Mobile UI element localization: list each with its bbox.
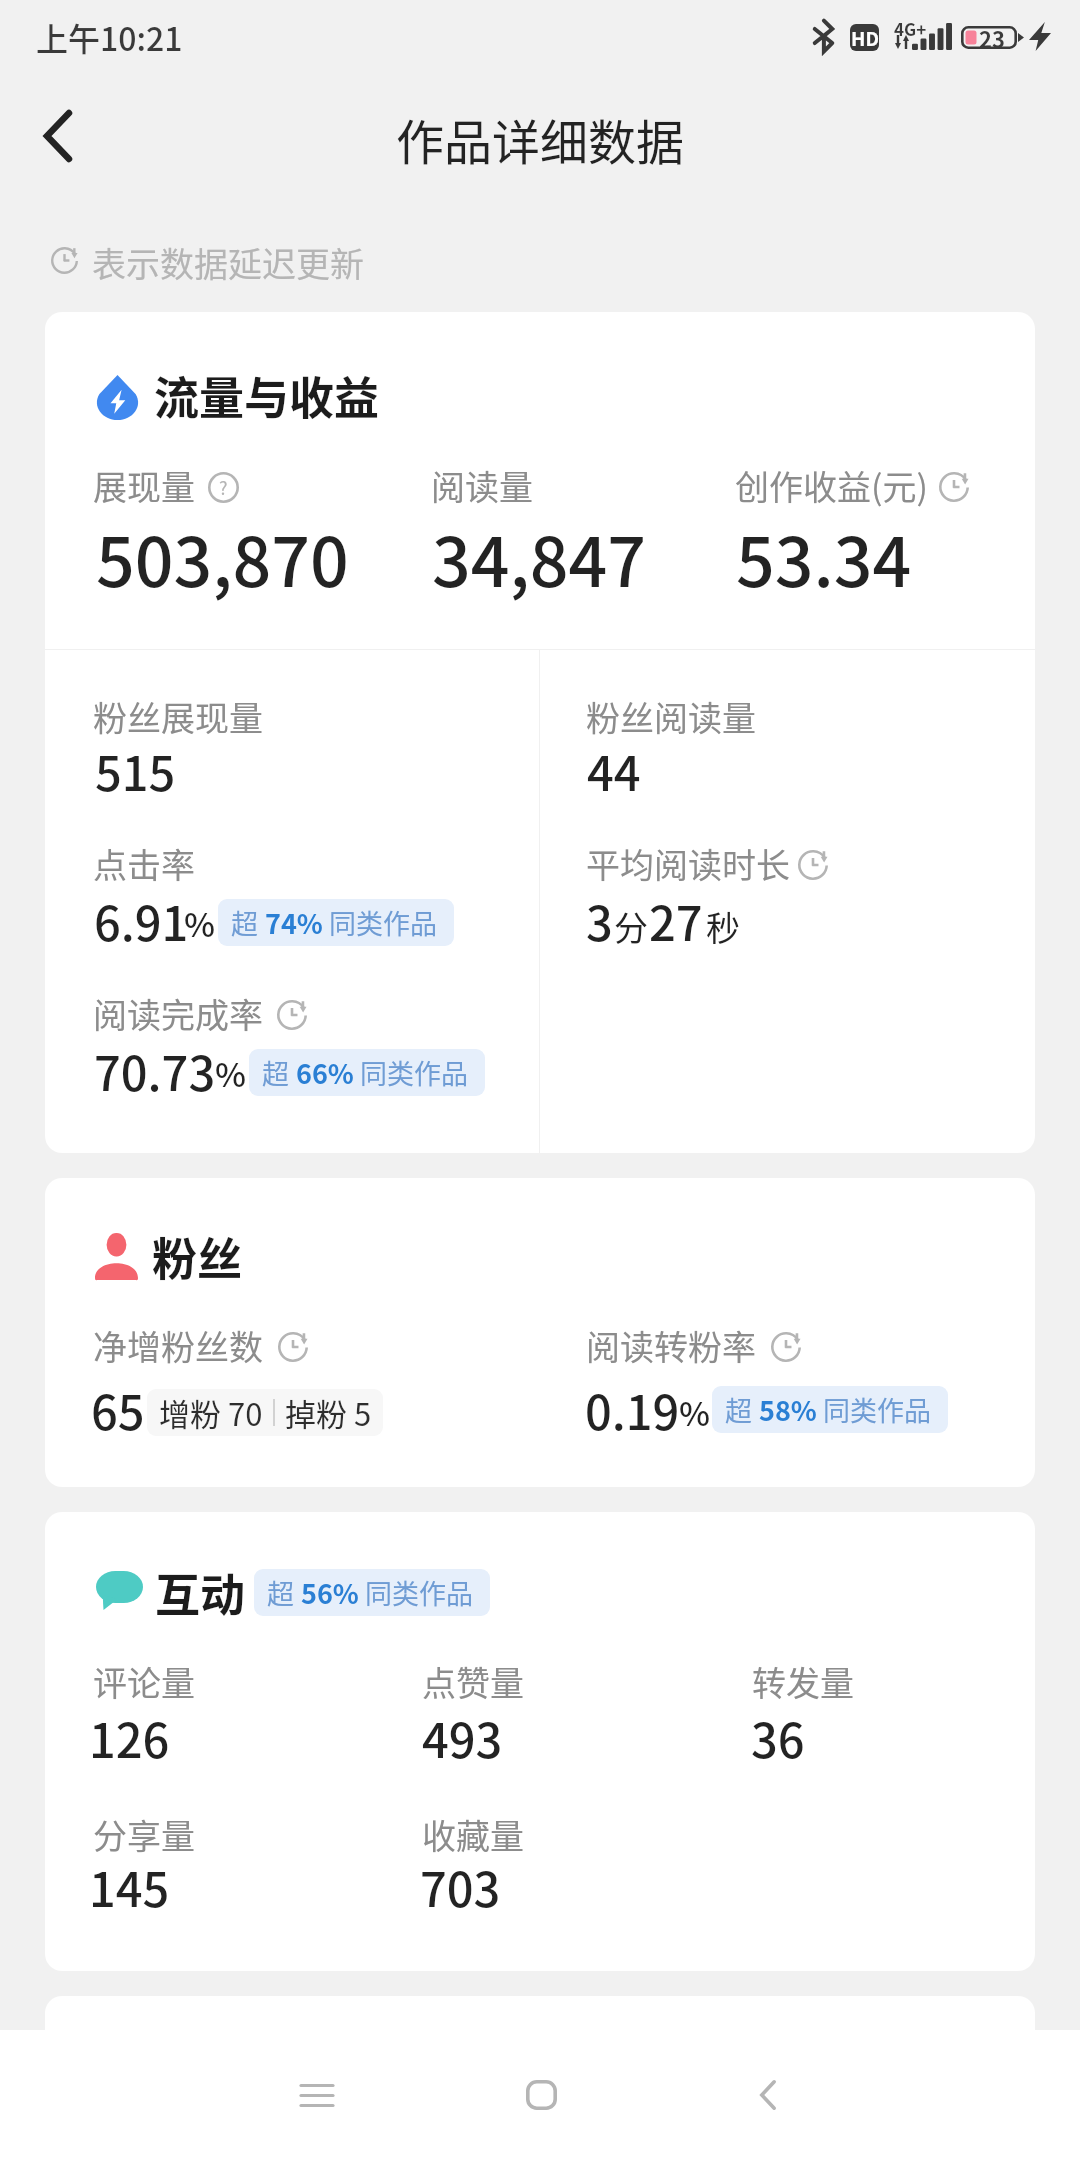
staticText: 66% (296, 1053, 354, 1092)
staticText: 44 (587, 736, 641, 804)
staticText: % (215, 1049, 246, 1097)
staticText: 0.19 (585, 1375, 680, 1443)
button[interactable]: Back (688, 2035, 848, 2155)
staticText: 53.34 (736, 508, 912, 606)
staticText: 4G+ (894, 16, 927, 41)
staticText: 作品详细数据 (396, 104, 685, 174)
staticText: 增粉 70 (159, 1390, 263, 1435)
staticText: 23 (979, 22, 1005, 54)
button[interactable]: Back (15, 93, 101, 179)
staticText: ? (219, 474, 228, 500)
staticText: 超 (725, 1390, 759, 1429)
button[interactable]: Recent apps (237, 2035, 397, 2155)
staticText: 6.91 (94, 886, 189, 954)
staticText: 转发量 (752, 1657, 854, 1706)
staticText: 同类作品 (817, 1390, 932, 1429)
staticText: 超 (267, 1573, 301, 1612)
staticText: 点赞量 (422, 1657, 524, 1706)
button[interactable]: 流量与收益 (45, 312, 1035, 1153)
staticText: 展现量 (93, 461, 195, 510)
staticText: 3 (586, 886, 613, 954)
staticText: 36 (751, 1703, 805, 1771)
staticText: HD (851, 24, 879, 51)
staticText: 分享量 (93, 1810, 195, 1859)
staticText: 493 (422, 1703, 503, 1771)
staticText: 秒 (706, 902, 740, 951)
staticText: 评论量 (93, 1657, 195, 1706)
staticText: 70.73 (94, 1036, 216, 1104)
staticText: 掉粉 5 (285, 1390, 372, 1435)
button[interactable]: 互动 (45, 1512, 1035, 1971)
staticText: 74% (265, 903, 323, 942)
staticText: 粉丝阅读量 (586, 692, 756, 741)
button[interactable]: 粉丝 (45, 1178, 1035, 1487)
staticText: % (184, 899, 215, 947)
staticText: 503,870 (96, 508, 349, 606)
staticText: 收藏量 (422, 1810, 524, 1859)
button[interactable]: Home (461, 2035, 621, 2155)
staticText: 点击率 (93, 839, 195, 888)
staticText: 515 (95, 736, 176, 804)
staticText: 同类作品 (323, 903, 438, 942)
staticText: 净增粉丝数 (93, 1321, 263, 1370)
staticText: 同类作品 (359, 1573, 474, 1612)
staticText: 58% (759, 1390, 817, 1429)
staticText: 分 (614, 902, 648, 951)
staticText: 粉丝展现量 (93, 692, 263, 741)
staticText: 阅读量 (431, 461, 533, 510)
staticText: 流量与收益 (154, 363, 380, 428)
staticText: 同类作品 (354, 1053, 469, 1092)
staticText: 34,847 (432, 508, 647, 606)
staticText: 互动 (155, 1560, 246, 1625)
staticText: % (679, 1388, 710, 1436)
staticText: 145 (89, 1852, 170, 1920)
staticText: 56% (301, 1573, 359, 1612)
staticText: 上午10:21 (36, 14, 183, 60)
staticText: 126 (89, 1703, 170, 1771)
staticText: 阅读转粉率 (586, 1321, 756, 1370)
staticText: 超 (262, 1053, 296, 1092)
button[interactable]: More info (208, 472, 239, 503)
staticText: 粉丝 (152, 1224, 243, 1289)
staticText: 超 (231, 903, 265, 942)
staticText: 表示数据延迟更新 (92, 238, 364, 287)
staticText: 平均阅读时长 (586, 839, 790, 888)
staticText: 阅读完成率 (93, 989, 263, 1038)
staticText: 创作收益(元) (735, 461, 928, 510)
staticText: 65 (91, 1375, 145, 1443)
staticText: 27 (649, 886, 703, 954)
staticText: 703 (420, 1852, 501, 1920)
